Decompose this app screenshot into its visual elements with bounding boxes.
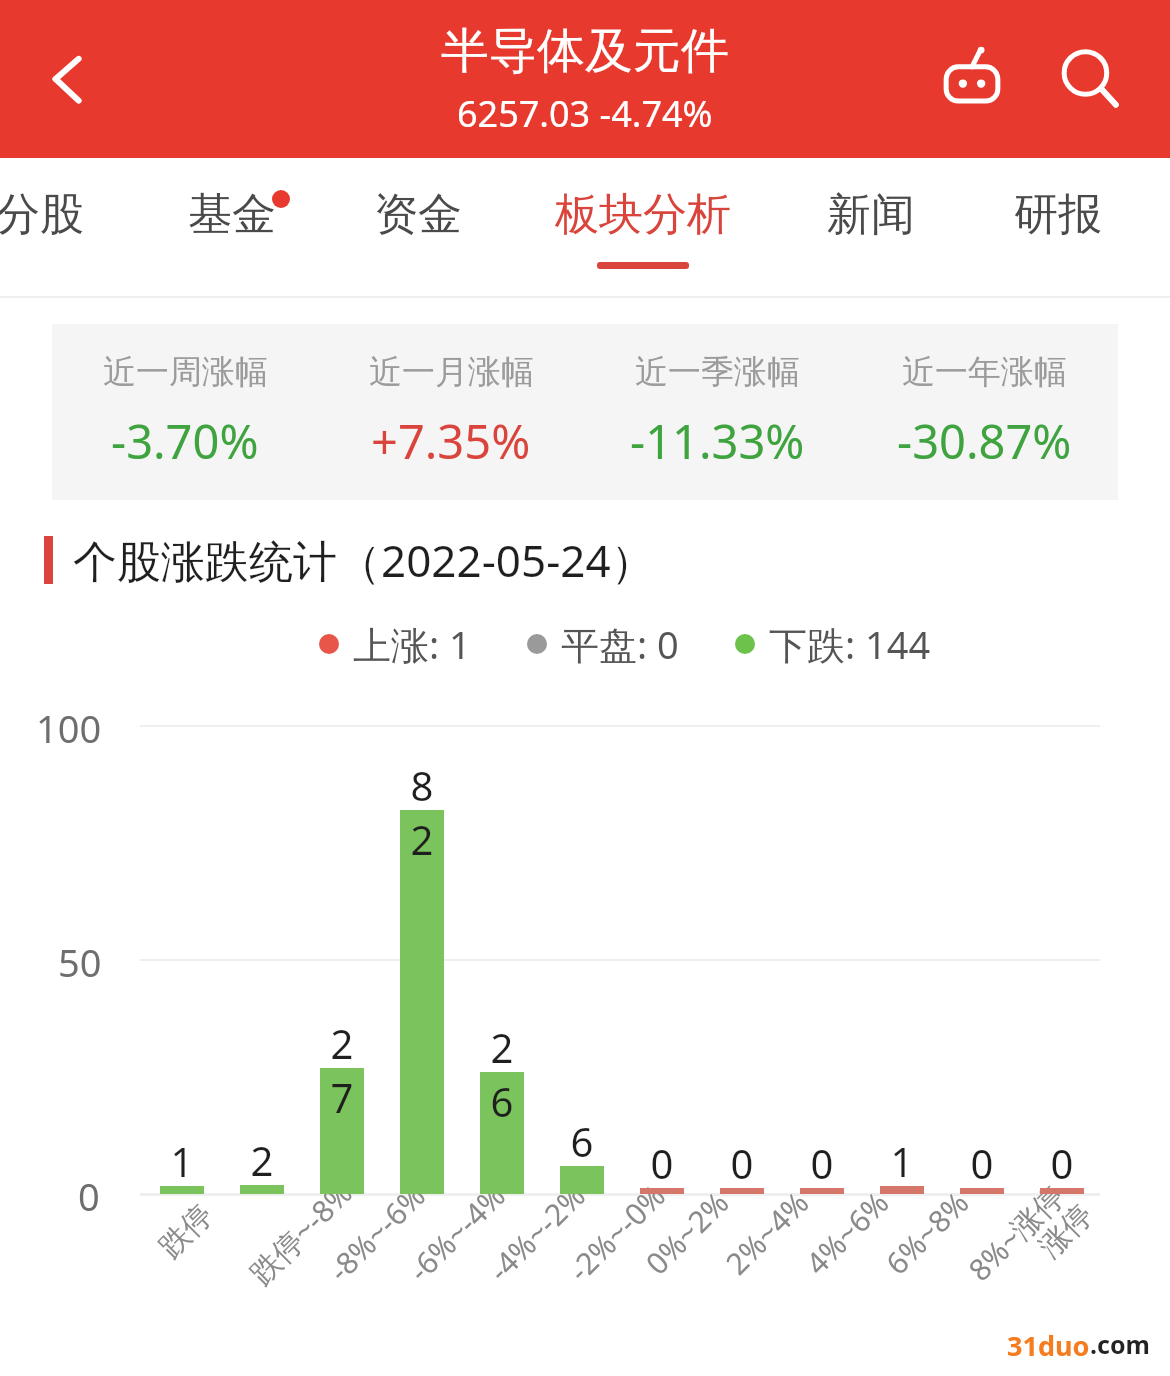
staticText: -3.70% xyxy=(111,409,259,473)
button[interactable]: 新闻 xyxy=(823,158,919,298)
staticText: 6 xyxy=(564,1114,600,1168)
staticText: 上涨: 1 xyxy=(353,618,471,670)
staticText: -8%~-6% xyxy=(319,1175,434,1290)
staticText: 跌停 xyxy=(151,1196,221,1266)
staticText: -2%~-0% xyxy=(559,1175,674,1290)
staticText: 0 xyxy=(804,1136,840,1190)
staticText: 分股 xyxy=(0,187,84,242)
button[interactable]: 板块分析 xyxy=(551,158,735,298)
staticText: 0 xyxy=(1044,1136,1080,1190)
button[interactable]: 研报 xyxy=(1010,158,1106,298)
staticText: 2 xyxy=(244,1133,280,1187)
staticText: 0 xyxy=(644,1136,680,1190)
button[interactable]: 资金 xyxy=(370,158,466,298)
button[interactable]: 基金 xyxy=(184,158,280,298)
button[interactable]: Search xyxy=(1052,41,1128,117)
staticText: 平盘: 0 xyxy=(561,618,679,670)
staticText: 50 xyxy=(58,936,102,988)
staticText: 100 xyxy=(36,702,102,754)
staticText: 6%~8% xyxy=(876,1182,977,1283)
staticText: .com xyxy=(1090,1327,1150,1361)
staticText: 27 xyxy=(324,1016,360,1124)
staticText: 研报 xyxy=(1014,187,1102,242)
staticText: 跌停~-8% xyxy=(240,1172,361,1293)
staticText: 资金 xyxy=(374,187,462,242)
staticText: 31duo xyxy=(1007,1327,1090,1364)
staticText: 2%~4% xyxy=(716,1182,817,1283)
staticText: 1 xyxy=(884,1134,920,1188)
staticText: -6%~-4% xyxy=(399,1175,514,1290)
staticText: 近一季涨幅 xyxy=(635,351,800,393)
staticText: 8%~涨停 xyxy=(959,1176,1073,1289)
button[interactable]: 分股 xyxy=(0,158,88,298)
staticText: 0 xyxy=(78,1170,100,1222)
button[interactable]: Assistant xyxy=(934,41,1010,117)
staticText: 26 xyxy=(484,1020,520,1128)
staticText: 4%~6% xyxy=(796,1182,897,1283)
staticText: 近一周涨幅 xyxy=(103,351,268,393)
staticText: 近一月涨幅 xyxy=(369,351,534,393)
button[interactable]: Back xyxy=(34,43,106,115)
staticText: -4%~-2% xyxy=(479,1175,594,1290)
staticText: 新闻 xyxy=(827,187,915,242)
staticText: 涨停 xyxy=(1031,1196,1101,1266)
staticText: 个股涨跌统计（2022-05-24） xyxy=(73,530,655,590)
staticText: 近一年涨幅 xyxy=(902,351,1067,393)
staticText: -30.87% xyxy=(897,409,1072,473)
staticText: 0 xyxy=(724,1136,760,1190)
staticText: 82 xyxy=(404,758,440,866)
staticText: 板块分析 xyxy=(555,187,731,242)
staticText: +7.35% xyxy=(371,409,531,473)
staticText: 下跌: 144 xyxy=(769,618,931,670)
staticText: 基金 xyxy=(188,187,276,242)
staticText: 6257.03 -4.74% xyxy=(457,89,713,138)
staticText: -11.33% xyxy=(630,409,805,473)
staticText: 1 xyxy=(164,1134,200,1188)
staticText: 半导体及元件 xyxy=(441,21,729,81)
staticText: 0%~2% xyxy=(636,1182,737,1283)
staticText: 0 xyxy=(964,1136,1000,1190)
